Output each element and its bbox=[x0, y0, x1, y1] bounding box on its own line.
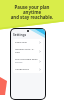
staticText: Pause your plan anytime and stay reachab… bbox=[5, 4, 59, 21]
staticText: Settings bbox=[13, 33, 27, 37]
button[interactable]: Stay reachable while bbox=[13, 56, 43, 66]
staticText: Stay reachable while bbox=[15, 58, 38, 61]
staticText: Notifications bbox=[15, 68, 30, 71]
button[interactable]: Manage eSIM / e-card bbox=[13, 46, 43, 56]
button[interactable]: Notifications bbox=[13, 66, 43, 73]
other: Open bbox=[39, 60, 41, 63]
other: Open bbox=[39, 41, 41, 44]
staticText: Pause plan bbox=[15, 41, 27, 44]
other: Open bbox=[39, 50, 41, 53]
other: Open bbox=[39, 68, 41, 71]
staticText: Manage eSIM / e-card bbox=[15, 48, 38, 54]
button[interactable]: Pause plan bbox=[13, 39, 43, 46]
staticText: paused bbox=[15, 61, 23, 64]
